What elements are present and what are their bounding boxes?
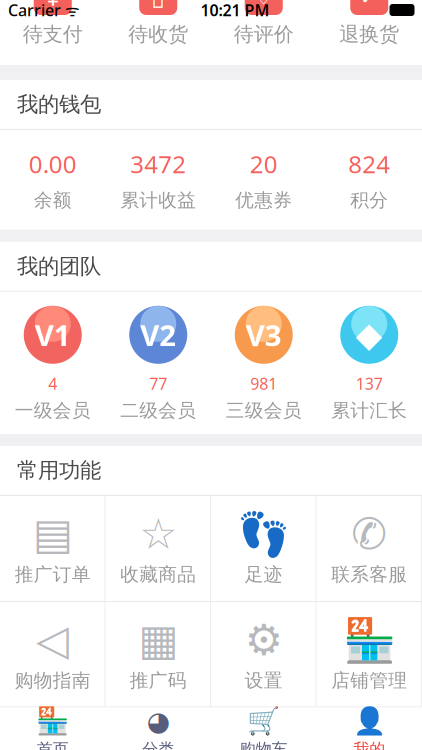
button[interactable]: ▤ xyxy=(0,496,105,601)
staticText: V2 xyxy=(140,315,176,354)
button[interactable]: V3 xyxy=(211,306,316,422)
staticText: 我的钱包 xyxy=(17,91,101,118)
staticText: 20 xyxy=(250,148,278,180)
staticText: ✓ xyxy=(359,0,380,10)
staticText: ♡ xyxy=(252,0,275,10)
staticText: 🏪 xyxy=(36,706,69,736)
staticText: 累计汇长 xyxy=(331,399,407,422)
staticText: 我的团队 xyxy=(17,253,101,279)
button[interactable]: ◕ xyxy=(105,707,211,750)
staticText: ▦ xyxy=(138,616,178,664)
button[interactable]: ¥ xyxy=(0,0,105,47)
staticText: 10:21 PM xyxy=(200,0,269,21)
button[interactable]: ▦ xyxy=(105,602,211,707)
button[interactable]: 0.00 xyxy=(0,148,105,212)
button[interactable]: ♡ xyxy=(211,0,316,47)
staticText: V1 xyxy=(35,315,71,354)
staticText: 981 xyxy=(250,373,277,394)
staticText: 推广订单 xyxy=(15,563,91,586)
staticText: 余额 xyxy=(34,189,72,212)
staticText: ⚙ xyxy=(245,616,283,664)
staticText: 我的 xyxy=(353,739,385,750)
button[interactable]: V1 xyxy=(0,306,105,422)
button[interactable]: ☆ xyxy=(105,496,211,601)
staticText: 77 xyxy=(149,373,167,394)
button[interactable]: ✓ xyxy=(316,0,422,47)
staticText: 退换货 xyxy=(339,22,399,47)
staticText: ¥ xyxy=(46,0,60,13)
staticText: 店铺管理 xyxy=(331,669,407,692)
staticText: ◆ xyxy=(356,315,383,354)
staticText: 三级会员 xyxy=(226,399,302,422)
staticText: ᯤ xyxy=(61,0,80,21)
button[interactable]: 3472 xyxy=(105,148,211,212)
button[interactable]: 🏪 xyxy=(0,707,105,750)
button[interactable]: ◁ xyxy=(0,602,105,707)
staticText: 购物车 xyxy=(240,739,288,750)
staticText: 👣 xyxy=(237,510,290,558)
staticText: Carrier xyxy=(8,0,61,21)
staticText: ◁ xyxy=(36,616,69,664)
button[interactable]: 🛒 xyxy=(211,707,316,750)
staticText: ▯ xyxy=(151,0,165,10)
staticText: 0.00 xyxy=(29,148,77,180)
button[interactable]: 824 xyxy=(316,148,422,212)
staticText: ◕ xyxy=(147,706,170,736)
button[interactable]: ◆ xyxy=(316,306,422,422)
staticText: 积分 xyxy=(350,189,388,212)
staticText: 累计收益 xyxy=(120,189,196,212)
staticText: 分类 xyxy=(142,739,174,750)
button[interactable]: 👤 xyxy=(316,707,422,750)
staticText: 待收货 xyxy=(128,22,188,47)
staticText: ▤ xyxy=(33,510,73,558)
staticText: 首页 xyxy=(37,739,69,750)
staticText: 购物指南 xyxy=(15,669,91,692)
staticText: 优惠券 xyxy=(235,189,292,212)
staticText: 137 xyxy=(356,373,383,394)
staticText: 联系客服 xyxy=(331,563,407,586)
staticText: V3 xyxy=(246,315,282,354)
button[interactable]: ⚙ xyxy=(211,602,316,707)
staticText: 待评价 xyxy=(234,22,294,47)
button[interactable]: ✆ xyxy=(316,496,422,601)
staticText: 🛒 xyxy=(247,706,280,736)
staticText: 👤 xyxy=(353,706,386,736)
button[interactable]: ▯ xyxy=(105,0,211,47)
staticText: 二级会员 xyxy=(120,399,196,422)
staticText: 🏪 xyxy=(343,616,396,664)
button[interactable]: 🏪 xyxy=(316,602,422,707)
button[interactable]: 20 xyxy=(211,148,316,212)
staticText: 3472 xyxy=(130,148,186,180)
staticText: 足迹 xyxy=(245,563,283,586)
staticText: 常用功能 xyxy=(17,457,101,484)
staticText: 待支付 xyxy=(23,22,83,47)
staticText: ✆ xyxy=(351,510,387,558)
staticText: 设置 xyxy=(245,669,283,692)
staticText: 4 xyxy=(48,373,57,394)
button[interactable]: 👣 xyxy=(211,496,316,601)
staticText: 824 xyxy=(348,148,390,180)
staticText: 推广码 xyxy=(130,669,187,692)
staticText: 一级会员 xyxy=(15,399,91,422)
staticText: 收藏商品 xyxy=(120,563,196,586)
staticText: ☆ xyxy=(139,510,177,558)
button[interactable]: V2 xyxy=(105,306,211,422)
